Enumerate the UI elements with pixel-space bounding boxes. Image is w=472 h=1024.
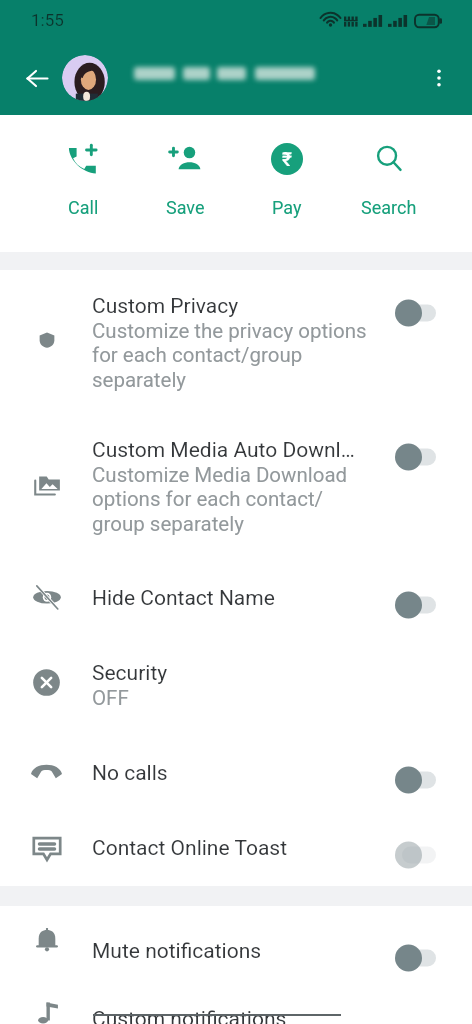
staticText: 1:55 — [31, 10, 64, 30]
button[interactable]: Custom Media Auto Downl… — [0, 414, 472, 562]
button[interactable]: Custom Privacy — [0, 270, 472, 414]
staticText: Customize Media Download options for eac… — [92, 463, 368, 536]
button[interactable]: More options — [418, 57, 460, 99]
staticText: ₹ — [282, 148, 292, 170]
staticText: Contact Online Toast — [92, 836, 288, 861]
button[interactable]: Back — [16, 57, 58, 99]
staticText: Pay — [272, 197, 302, 218]
button[interactable]: Security — [0, 637, 472, 737]
button[interactable]: Call — [32, 115, 134, 252]
staticText: OFF — [92, 686, 129, 710]
button[interactable]: Save — [134, 115, 236, 252]
staticText: Search — [361, 197, 417, 218]
button[interactable]: Contact Online Toast — [0, 812, 472, 886]
staticText: Mute notifications — [92, 939, 262, 964]
button[interactable]: Hide Contact Name — [0, 562, 472, 637]
button[interactable]: Mute notifications — [0, 906, 472, 974]
staticText: Save — [166, 197, 205, 218]
staticText: Hide Contact Name — [92, 586, 275, 611]
staticText: Call — [68, 197, 99, 218]
staticText: Custom Privacy — [92, 294, 239, 319]
staticText: Security — [92, 661, 168, 686]
button[interactable]: Profile photo — [62, 55, 108, 101]
button[interactable]: No calls — [0, 737, 472, 812]
staticText: No calls — [92, 761, 168, 786]
staticText: Customize the privacy options for each c… — [92, 319, 368, 392]
button[interactable]: Search — [338, 115, 440, 252]
button[interactable]: Custom notifications — [0, 974, 472, 1024]
staticText: Custom notifications — [92, 1007, 287, 1024]
staticText: Custom Media Auto Downl… — [92, 438, 355, 463]
button[interactable]: ₹ — [236, 115, 338, 252]
